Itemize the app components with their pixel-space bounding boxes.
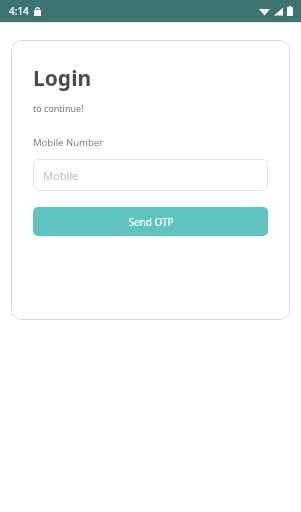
button[interactable]: Send OTP <box>33 207 268 236</box>
staticText: Mobile Number <box>33 136 104 149</box>
staticText: 4:14 <box>9 4 29 18</box>
staticText: Mobile <box>43 168 79 183</box>
staticText: Login <box>33 64 92 93</box>
staticText: to continue! <box>33 102 84 114</box>
button[interactable]: Mobile <box>33 159 268 191</box>
staticText: Send OTP <box>128 215 174 229</box>
